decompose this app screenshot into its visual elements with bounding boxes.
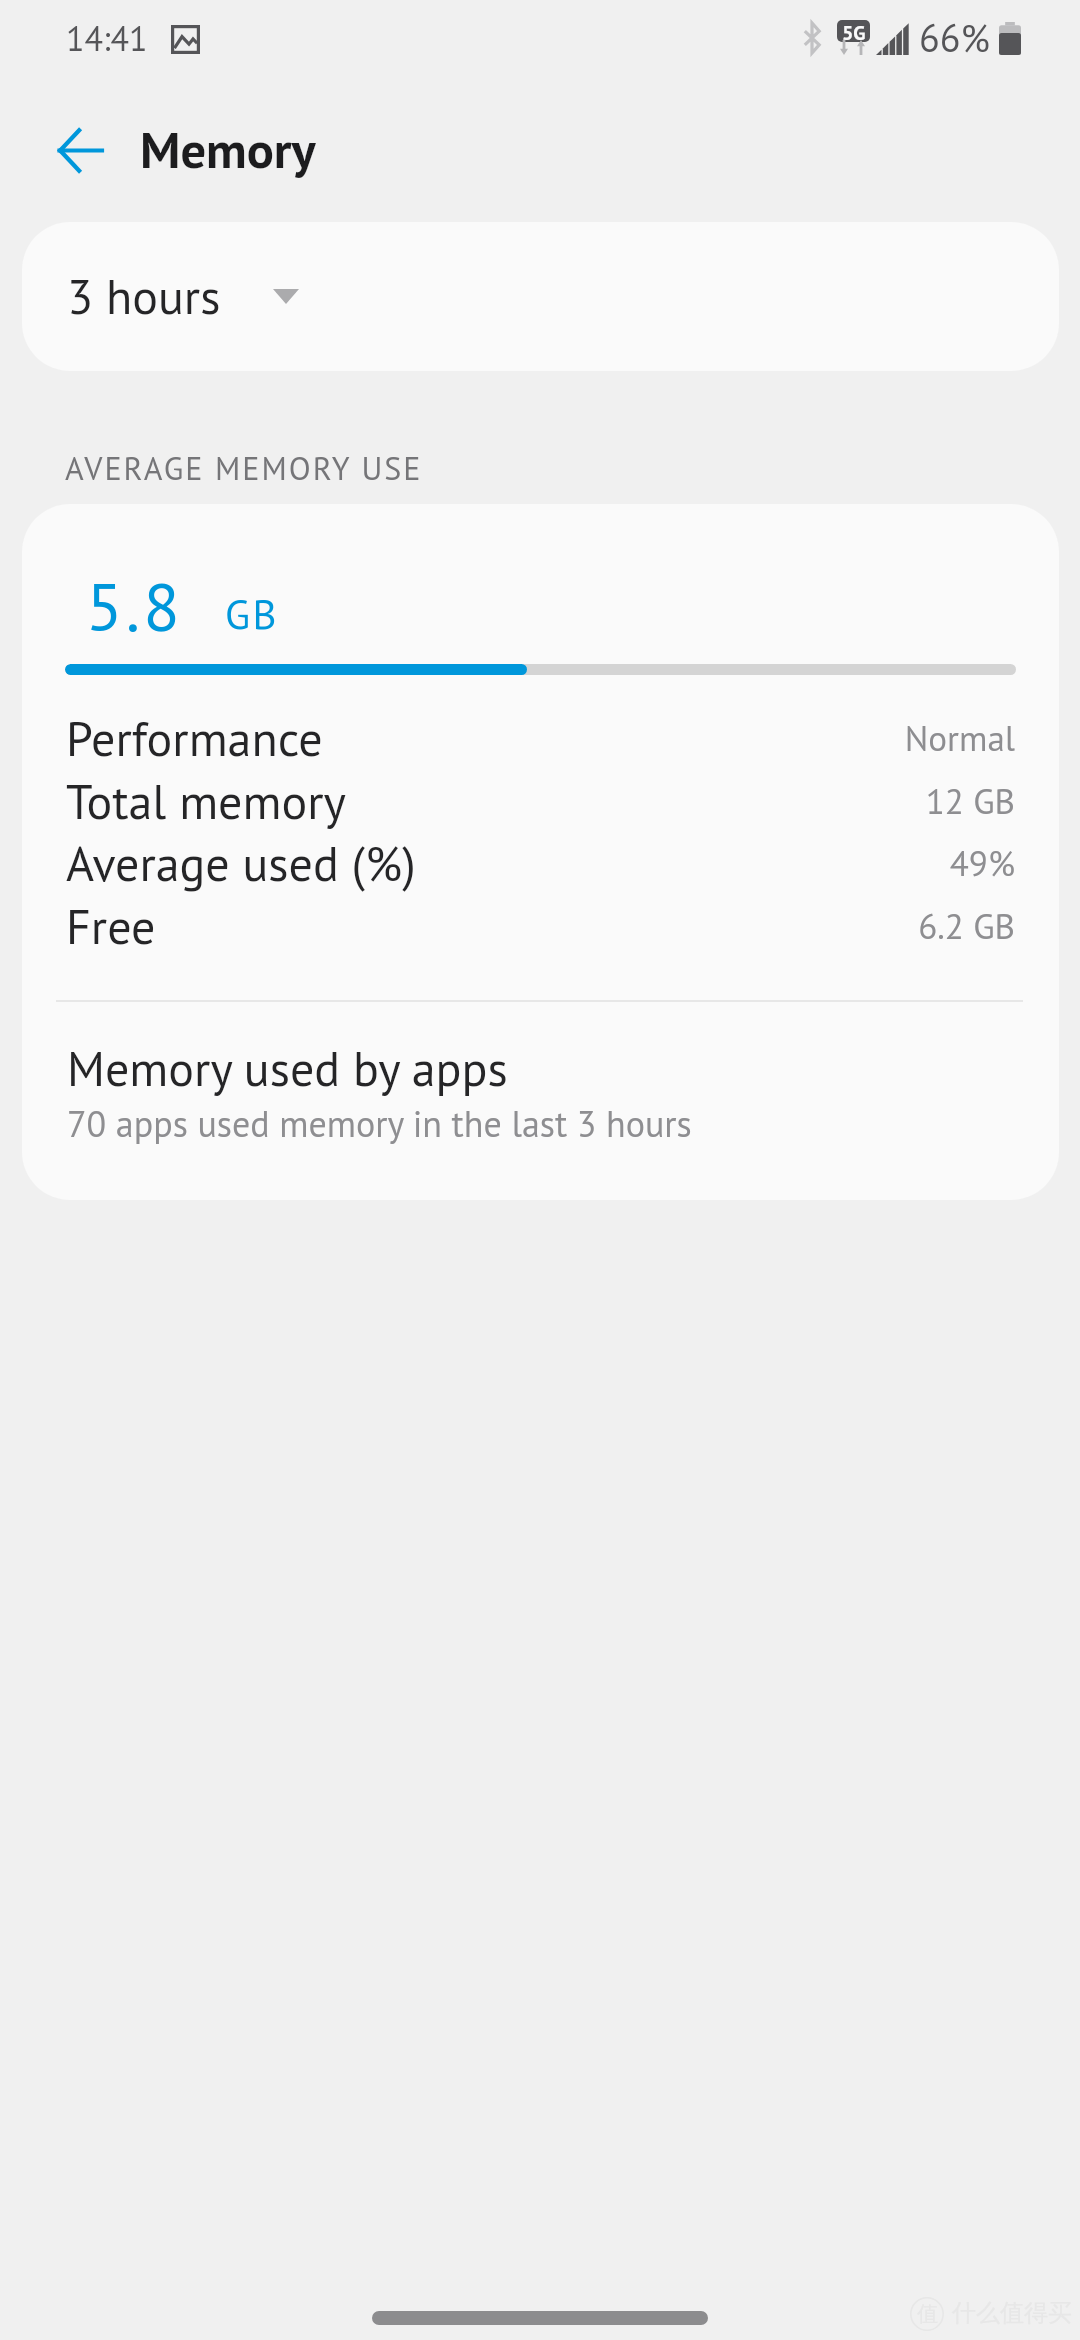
staticText: Normal: [615, 715, 1015, 760]
staticText: 3 hours: [67, 265, 221, 327]
button[interactable]: 3 hours: [22, 222, 1059, 371]
button[interactable]: Navigate up: [38, 108, 122, 192]
staticText: 70 apps used memory in the last 3 hours: [67, 1100, 692, 1147]
staticText: Memory used by apps: [67, 1037, 508, 1099]
staticText: 12 GB: [615, 778, 1015, 823]
staticText: Performance: [66, 707, 323, 769]
staticText: 什么值得买: [952, 2298, 1072, 2328]
staticText: Free: [66, 895, 156, 957]
staticText: 66%: [919, 13, 990, 62]
staticText: 49%: [615, 840, 1015, 885]
staticText: 5G: [842, 20, 866, 42]
staticText: Average used (%): [66, 832, 416, 894]
staticText: 值: [917, 2301, 938, 2327]
staticText: AVERAGE MEMORY USE: [65, 447, 423, 488]
staticText: GB: [225, 587, 280, 640]
staticText: 6.2 GB: [615, 903, 1015, 948]
staticText: Total memory: [66, 770, 346, 832]
staticText: 14:41: [66, 16, 148, 60]
staticText: 5.8: [86, 563, 183, 650]
staticText: Memory: [140, 117, 316, 182]
button[interactable]: Memory used by apps: [22, 1005, 1059, 1199]
